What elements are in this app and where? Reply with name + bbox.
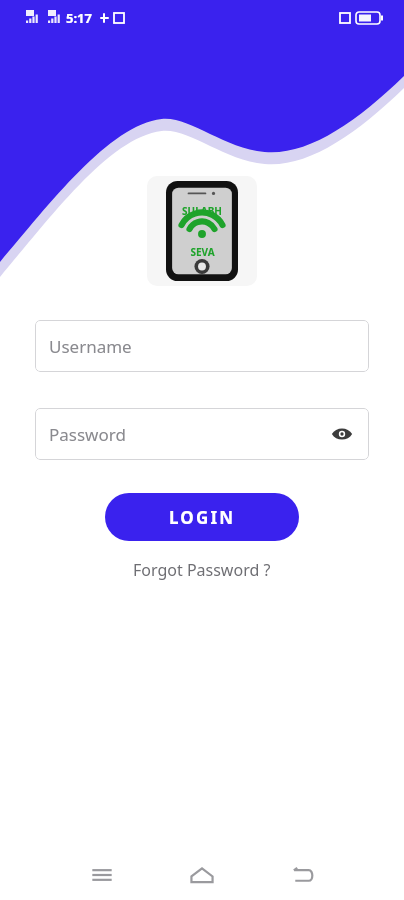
staticText: 5:17 (66, 9, 92, 27)
staticText: SULABH (182, 204, 222, 218)
staticText: Password (49, 423, 329, 446)
button[interactable]: Show password (329, 421, 355, 447)
staticText: Forgot Password ? (133, 559, 271, 581)
button[interactable]: Username (35, 320, 369, 372)
staticText: Username (49, 335, 355, 358)
button[interactable]: LOGIN (105, 493, 299, 541)
button[interactable]: Recent apps (78, 851, 126, 899)
staticText: LOGIN (169, 506, 236, 529)
button[interactable]: Home (178, 851, 226, 899)
staticText: SEVA (190, 245, 215, 259)
button[interactable]: Password (35, 408, 369, 460)
button[interactable]: Forgot Password ? (125, 555, 279, 585)
button[interactable]: Back (278, 851, 326, 899)
